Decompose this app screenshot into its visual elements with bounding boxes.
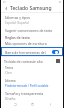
button[interactable]: Recents bbox=[11, 100, 19, 108]
button[interactable]: Home bbox=[28, 100, 36, 108]
staticText: Predeterminado / Perfil variable bbox=[5, 84, 49, 88]
button[interactable]: Tamaño y transparencia bbox=[1, 90, 63, 97]
staticText: Más opciones de escritura bbox=[5, 41, 47, 46]
button[interactable]: Back bbox=[46, 100, 54, 108]
button[interactable]: Toggle keyboard toolbar bbox=[52, 50, 59, 54]
button[interactable]: Idioma bbox=[1, 77, 63, 90]
button[interactable]: Barra de herramientas del teclado bbox=[2, 48, 62, 55]
staticText: Idioma bbox=[5, 79, 16, 83]
staticText: Teclado de contraste alto bbox=[4, 59, 56, 63]
button[interactable]: Back bbox=[3, 5, 9, 11]
button[interactable]: Más opciones de escritura bbox=[1, 40, 63, 47]
staticText: Diseño bbox=[5, 97, 16, 100]
staticText: Claro bbox=[5, 71, 13, 75]
staticText: Tamaño y transparencia bbox=[5, 91, 44, 96]
staticText: Tema bbox=[5, 66, 14, 70]
button[interactable]: Tema bbox=[1, 64, 63, 77]
staticText: Idiomas y tipos bbox=[5, 15, 30, 20]
button[interactable]: Teclado de contraste alto bbox=[1, 57, 63, 64]
staticText: Reglas de texto bbox=[5, 35, 30, 40]
staticText: Español (España) bbox=[5, 21, 29, 25]
button[interactable]: Idiomas y tipos bbox=[1, 13, 63, 27]
button[interactable]: Diseño bbox=[1, 97, 63, 100]
staticText: Teclado Samsung bbox=[10, 5, 52, 12]
staticText: Barra de herramientas del teclado bbox=[5, 50, 51, 54]
button[interactable]: Sugerir conversiones de texto bbox=[1, 27, 63, 34]
staticText: Sugerir conversiones de texto bbox=[5, 28, 53, 33]
